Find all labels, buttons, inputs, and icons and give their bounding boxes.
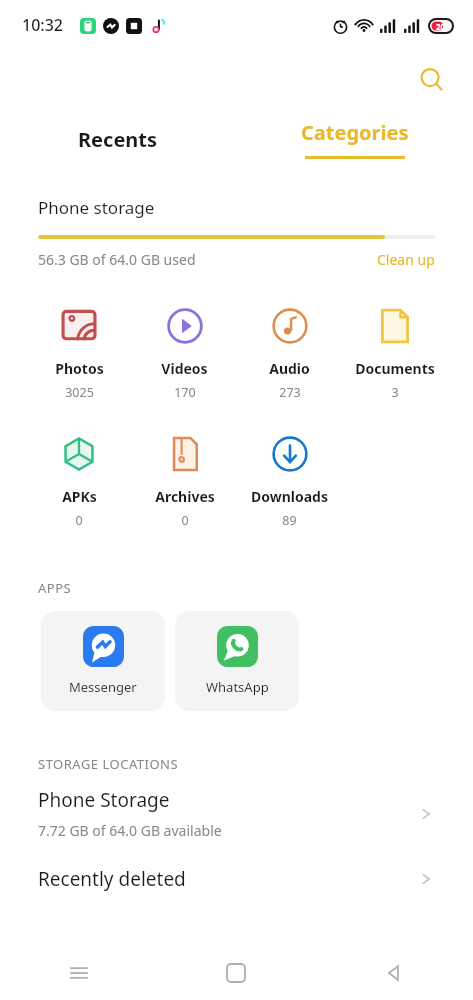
staticText: 3025 xyxy=(65,384,94,401)
staticText: APPS xyxy=(38,579,72,597)
staticText: 170 xyxy=(174,384,196,401)
staticText: Recents xyxy=(78,126,158,153)
staticText: 3 xyxy=(391,384,399,401)
staticText: Phone storage xyxy=(38,196,155,219)
button[interactable]: Photos xyxy=(26,303,132,403)
staticText: 56.3 GB of 64.0 GB used xyxy=(38,250,196,269)
button[interactable]: Downloads xyxy=(237,431,342,531)
staticText: Videos xyxy=(161,359,208,378)
staticText: 0 xyxy=(75,512,83,529)
button[interactable]: Clean up xyxy=(377,250,435,269)
staticText: Audio xyxy=(269,359,310,378)
button[interactable]: Documents xyxy=(342,303,447,403)
staticText: Recently deleted xyxy=(38,866,186,892)
staticText: 10:32 xyxy=(22,14,63,36)
button[interactable]: Audio xyxy=(237,303,342,403)
staticText: 20 xyxy=(436,21,446,32)
staticText: Phone Storage xyxy=(38,787,170,813)
staticText: Archives xyxy=(155,487,215,506)
button[interactable]: Phone Storage xyxy=(0,785,473,842)
staticText: Clean up xyxy=(377,250,435,269)
button[interactable]: APKs xyxy=(26,431,132,531)
staticText: 273 xyxy=(279,384,301,401)
button[interactable]: Videos xyxy=(132,303,237,403)
button[interactable]: Recents xyxy=(0,108,236,170)
button[interactable]: Home xyxy=(157,946,315,1000)
button[interactable]: Archives xyxy=(132,431,237,531)
staticText: Messenger xyxy=(69,678,137,696)
staticText: 7.72 GB of 64.0 GB available xyxy=(38,821,222,840)
staticText: Documents xyxy=(355,359,435,378)
staticText: WhatsApp xyxy=(206,678,269,696)
staticText: Photos xyxy=(55,359,104,378)
button[interactable]: Categories xyxy=(236,108,473,170)
button[interactable]: Back xyxy=(315,946,473,1000)
button[interactable]: Messenger xyxy=(41,611,165,711)
button[interactable]: WhatsApp xyxy=(175,611,299,711)
staticText: APKs xyxy=(62,487,97,506)
button[interactable]: Recent apps xyxy=(0,946,157,1000)
button[interactable]: Recently deleted xyxy=(0,864,473,894)
staticText: Categories xyxy=(301,119,409,146)
staticText: Downloads xyxy=(251,487,328,506)
staticText: STORAGE LOCATIONS xyxy=(38,755,179,773)
button[interactable]: Search xyxy=(415,63,449,97)
staticText: 0 xyxy=(181,512,189,529)
staticText: 89 xyxy=(282,512,297,529)
